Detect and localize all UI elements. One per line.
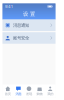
staticText: 发现 [26, 92, 32, 96]
button[interactable]: 账号安全 [2, 32, 55, 44]
staticText: 消息通知 [13, 22, 29, 28]
staticText: 首页 [5, 92, 11, 96]
button[interactable]: 我的 [45, 84, 55, 97]
button[interactable]: 消息 [13, 84, 24, 97]
staticText: 账号安全 [13, 35, 29, 41]
button[interactable]: 消息通知 [2, 19, 55, 31]
button[interactable]: 购物 [34, 84, 45, 97]
button[interactable]: 首页 [2, 84, 13, 97]
staticText: 购物 [37, 92, 43, 96]
staticText: 消息 [15, 92, 21, 96]
staticText: 我的 [47, 92, 53, 96]
button[interactable]: 发现 [24, 84, 34, 97]
staticText: 设 置 [23, 11, 35, 17]
staticText: 9:41 [5, 4, 13, 9]
